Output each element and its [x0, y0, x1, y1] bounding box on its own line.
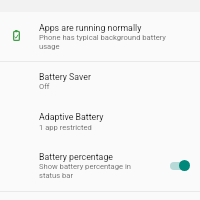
staticText: 1 app restricted — [39, 123, 119, 132]
staticText: Battery percentage — [39, 152, 113, 162]
button[interactable]: Battery percentage — [0, 142, 200, 188]
button[interactable]: Battery health — [0, 12, 200, 61]
other: Battery health — [13, 30, 20, 41]
staticText: Adaptive Battery — [39, 112, 104, 122]
staticText: Show battery percentage in status bar — [39, 162, 134, 180]
staticText: Phone has typical background battery usa… — [39, 33, 174, 51]
staticText: Battery Saver — [39, 72, 91, 82]
staticText: Apps are running normally — [39, 23, 142, 33]
button[interactable]: Battery Saver — [0, 62, 200, 100]
button[interactable]: Adaptive Battery — [0, 102, 200, 140]
staticText: Off — [39, 82, 99, 91]
button[interactable]: Battery percentage — [168, 157, 190, 174]
